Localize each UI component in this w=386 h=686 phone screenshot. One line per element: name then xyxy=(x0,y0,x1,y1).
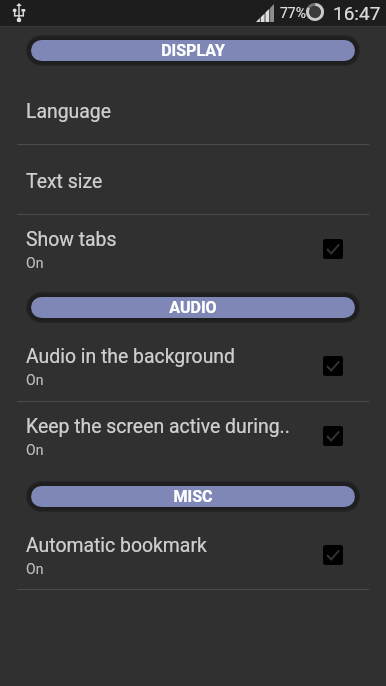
staticText: On xyxy=(26,561,44,577)
button[interactable]: Keep the screen active during.. xyxy=(0,402,386,471)
button[interactable]: Language xyxy=(0,75,386,144)
staticText: AUDIO xyxy=(169,298,217,317)
button[interactable]: Show tabs xyxy=(0,215,386,284)
staticText: Automatic bookmark xyxy=(26,534,207,557)
staticText: DISPLAY xyxy=(161,41,225,60)
staticText: Language xyxy=(26,100,111,123)
staticText: Text size xyxy=(26,170,103,193)
staticText: Keep the screen active during.. xyxy=(26,415,290,438)
other: Signal strength xyxy=(256,4,274,22)
button[interactable]: MISC xyxy=(31,486,355,507)
button[interactable]: Automatic bookmark xyxy=(0,521,386,590)
button[interactable]: DISPLAY xyxy=(31,40,355,61)
staticText: MISC xyxy=(173,487,213,506)
staticText: Audio in the background xyxy=(26,345,235,368)
button[interactable]: AUDIO xyxy=(31,297,355,318)
staticText: 16:47 xyxy=(333,2,381,24)
other: USB connected xyxy=(12,3,26,23)
staticText: 77% xyxy=(280,5,306,21)
button[interactable]: Audio in the background xyxy=(0,332,386,401)
staticText: On xyxy=(26,372,44,388)
other: Battery charging xyxy=(306,3,324,21)
staticText: On xyxy=(26,255,44,271)
button[interactable]: Text size xyxy=(0,145,386,214)
staticText: On xyxy=(26,442,44,458)
staticText: Show tabs xyxy=(26,228,117,251)
